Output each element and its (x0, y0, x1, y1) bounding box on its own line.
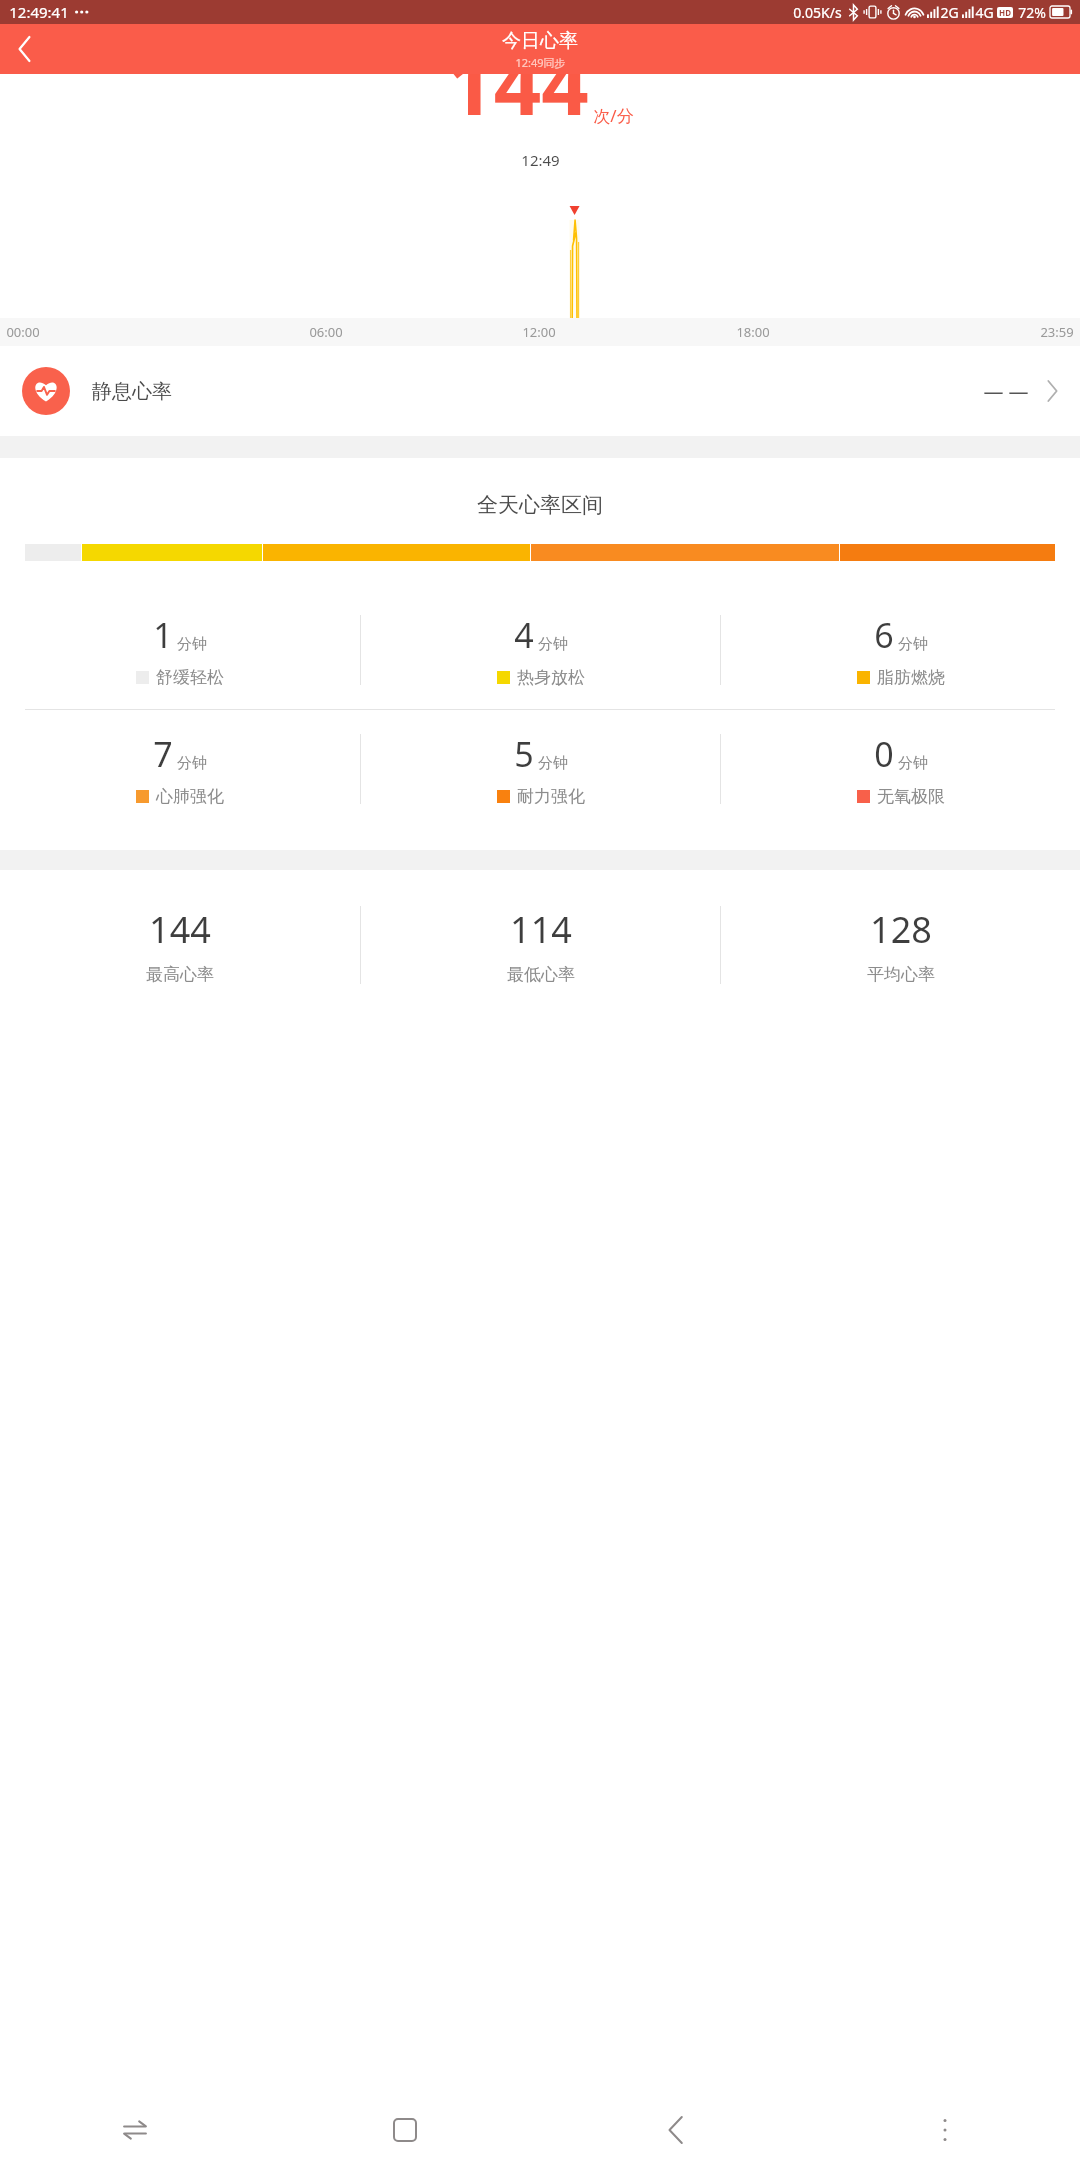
button[interactable]: Back (540, 2100, 810, 2160)
staticText: 分钟 (538, 635, 568, 654)
staticText: 4G (975, 3, 994, 22)
button[interactable]: 静息心率 (0, 346, 1080, 436)
staticText: 静息心率 (92, 379, 172, 404)
staticText: 次/分 (593, 104, 634, 127)
staticText: 今日心率 (502, 29, 578, 53)
staticText: 心肺强化 (156, 786, 224, 807)
button[interactable]: Switch (0, 2100, 270, 2160)
staticText: 114 (510, 905, 572, 954)
staticText: 18:00 (736, 323, 770, 341)
staticText: 144 (446, 26, 589, 139)
button[interactable]: Menu (810, 2100, 1080, 2160)
staticText: 12:00 (522, 323, 556, 341)
staticText: 耐力强化 (517, 786, 585, 807)
staticText: 23:59 (1040, 323, 1074, 341)
staticText: 7 (153, 731, 173, 777)
staticText: 06:00 (309, 323, 343, 341)
staticText: 4 (514, 612, 534, 658)
staticText: 0 (874, 731, 894, 777)
staticText: 无氧极限 (877, 786, 945, 807)
staticText: 12:49:41 (9, 2, 69, 22)
staticText: 平均心率 (867, 964, 935, 985)
staticText: HD (999, 7, 1011, 18)
staticText: 12:49 (521, 150, 560, 170)
staticText: 5 (514, 731, 534, 777)
staticText: 最低心率 (507, 964, 575, 985)
staticText: 分钟 (177, 754, 207, 773)
staticText: 128 (870, 905, 932, 954)
staticText: 热身放松 (517, 667, 585, 688)
staticText: 144 (149, 905, 211, 954)
staticText: 分钟 (538, 754, 568, 773)
button[interactable]: Recents (270, 2100, 540, 2160)
staticText: 72% (1018, 3, 1046, 22)
staticText: 全天心率区间 (477, 492, 603, 518)
staticText: 2G (940, 3, 959, 22)
staticText: 00:00 (6, 323, 40, 341)
staticText: 脂肪燃烧 (877, 667, 945, 688)
staticText: 12:49同步 (515, 55, 566, 70)
staticText: 最高心率 (146, 964, 214, 985)
staticText: 舒缓轻松 (156, 667, 224, 688)
staticText: 分钟 (898, 635, 928, 654)
button[interactable]: Back (0, 25, 48, 73)
staticText: 分钟 (898, 754, 928, 773)
staticText: 1 (153, 612, 173, 658)
staticText: 6 (874, 612, 894, 658)
staticText: — — (983, 378, 1029, 405)
staticText: 0.05K/s (793, 3, 842, 22)
staticText: 分钟 (177, 635, 207, 654)
